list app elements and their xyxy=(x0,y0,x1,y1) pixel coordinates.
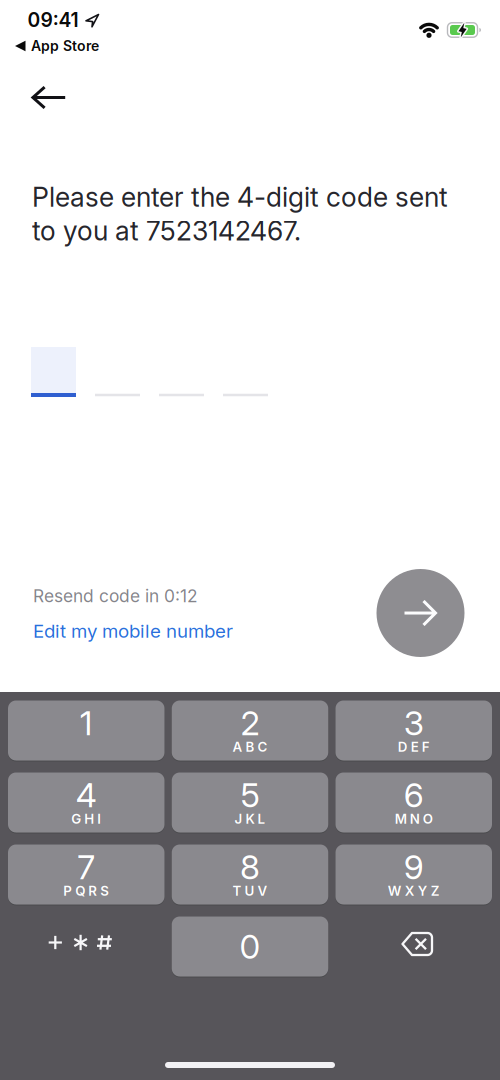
button[interactable]: 0 xyxy=(172,916,328,976)
staticText: 09:41 xyxy=(27,8,78,32)
button[interactable]: 3 xyxy=(335,700,492,760)
staticText: 1 xyxy=(80,703,93,743)
staticText: App Store xyxy=(31,37,99,54)
staticText: 7 xyxy=(77,847,95,887)
staticText: 6 xyxy=(404,775,424,815)
button[interactable]: More symbols xyxy=(8,916,164,976)
staticText: 9 xyxy=(404,847,424,887)
button[interactable]: 6 xyxy=(335,772,492,832)
button[interactable]: 8 xyxy=(172,844,328,904)
staticText: J K L xyxy=(234,811,265,827)
staticText: M N O xyxy=(395,811,433,827)
button[interactable]: Back to App Store xyxy=(15,37,99,54)
staticText: Resend code in 0:12 xyxy=(33,585,198,606)
staticText: P Q R S xyxy=(63,883,109,899)
staticText: G H I xyxy=(71,811,101,827)
staticText: T U V xyxy=(232,883,267,899)
staticText: 0 xyxy=(239,926,260,967)
staticText: 8 xyxy=(240,847,260,887)
staticText: 3 xyxy=(404,703,424,743)
staticText: 5 xyxy=(240,775,259,815)
staticText: W X Y Z xyxy=(388,883,440,899)
staticText: D E F xyxy=(398,739,430,755)
staticText: A B C xyxy=(232,739,267,755)
button[interactable]: 1 xyxy=(8,700,164,760)
staticText: Edit my mobile number xyxy=(33,620,233,642)
button[interactable]: Back xyxy=(14,72,84,122)
button[interactable]: 2 xyxy=(172,700,328,760)
staticText: 2 xyxy=(240,703,259,743)
button[interactable]: Delete xyxy=(335,916,492,976)
button[interactable]: 7 xyxy=(8,844,164,904)
button[interactable]: Edit my mobile number xyxy=(33,616,263,646)
button[interactable]: 4 xyxy=(8,772,164,832)
button[interactable]: Next xyxy=(376,569,464,657)
button[interactable]: 9 xyxy=(335,844,492,904)
button[interactable]: 5 xyxy=(172,772,328,832)
staticText: 4 xyxy=(76,775,97,815)
staticText: Please enter the 4-digit code sent to yo… xyxy=(32,181,448,247)
